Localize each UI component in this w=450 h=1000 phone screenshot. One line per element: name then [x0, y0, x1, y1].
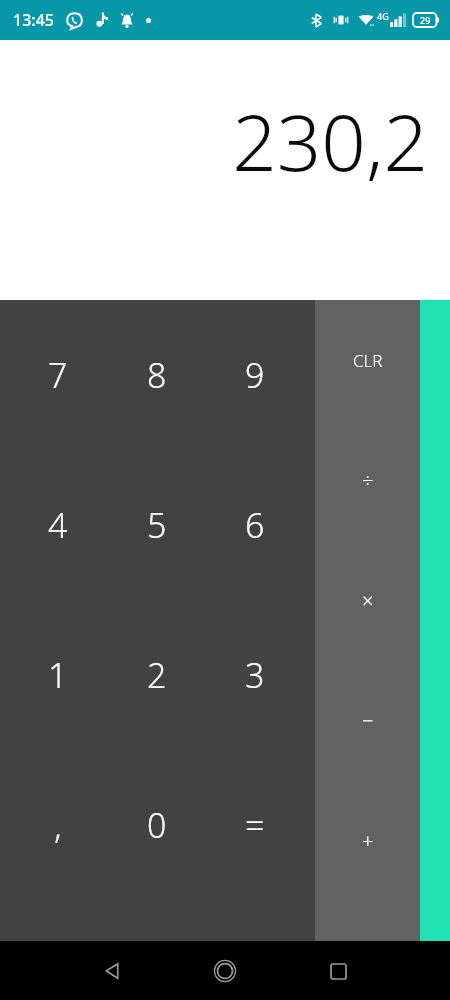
staticText: −	[362, 707, 374, 734]
button[interactable]: 4	[6, 450, 110, 600]
button[interactable]: ×	[315, 540, 420, 660]
button[interactable]: Recent apps	[314, 947, 362, 995]
staticText: 4G	[377, 10, 389, 22]
staticText: 5	[147, 502, 167, 548]
staticText: =	[245, 802, 265, 848]
staticText: ,	[54, 802, 62, 848]
staticText: +	[362, 827, 374, 854]
staticText: CLR	[353, 349, 383, 372]
staticText: 1	[48, 652, 68, 698]
staticText: ×	[362, 587, 374, 614]
button[interactable]: Home	[201, 947, 249, 995]
button[interactable]: 6	[203, 450, 307, 600]
staticText: 8	[147, 352, 167, 398]
staticText: 13:45	[13, 9, 54, 31]
staticText: 7	[48, 352, 68, 398]
staticText: 230,2	[232, 88, 428, 194]
staticText: 29	[420, 14, 431, 26]
button[interactable]: 8	[105, 300, 209, 450]
button[interactable]: CLR	[315, 300, 420, 420]
staticText: 4	[48, 502, 68, 548]
staticText: 6	[245, 502, 265, 548]
staticText: 2	[147, 652, 167, 698]
button[interactable]: 9	[203, 300, 307, 450]
button[interactable]: =	[203, 750, 307, 900]
button[interactable]: 5	[105, 450, 209, 600]
button[interactable]: +	[315, 780, 420, 900]
staticText: 3	[245, 652, 265, 698]
button[interactable]: Back	[88, 947, 136, 995]
button[interactable]: 3	[203, 600, 307, 750]
button[interactable]: ÷	[315, 420, 420, 540]
button[interactable]: 0	[105, 750, 209, 900]
button[interactable]: 7	[6, 300, 110, 450]
staticText: 9	[245, 352, 265, 398]
button[interactable]: ,	[6, 750, 110, 900]
button[interactable]: −	[315, 660, 420, 780]
staticText: ÷	[362, 467, 374, 494]
button[interactable]: 2	[105, 600, 209, 750]
staticText: 0	[147, 802, 167, 848]
button[interactable]: 1	[6, 600, 110, 750]
